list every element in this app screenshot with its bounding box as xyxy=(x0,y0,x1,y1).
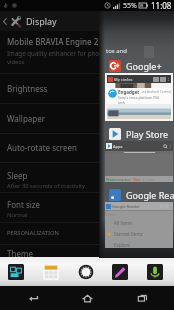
staticText: Auto-rotate screen xyxy=(7,142,77,153)
button[interactable]: Google Reader xyxy=(105,188,174,248)
staticText: Sony's cross-platform PS4 xyxy=(118,95,159,100)
staticText: Google+ xyxy=(126,60,162,72)
staticText: via Android Central xyxy=(142,90,171,94)
button[interactable]: Notes xyxy=(112,264,128,280)
staticText: Engadget xyxy=(118,89,140,95)
staticText: Font size xyxy=(7,199,41,210)
staticText: videos xyxy=(7,58,25,66)
staticText: Mobile BRAVIA Engine 2 xyxy=(7,36,99,47)
staticText: tos and xyxy=(106,47,127,55)
button[interactable]: Google+ xyxy=(105,59,174,73)
staticText: Taxi xyxy=(133,177,141,182)
button[interactable]: Calculator xyxy=(43,264,59,280)
staticText: Brightness xyxy=(7,83,48,94)
button[interactable]: Google+ xyxy=(105,59,174,121)
staticText: Wallpaper xyxy=(7,113,46,124)
staticText: Crysis xyxy=(143,177,155,182)
button[interactable]: Timer xyxy=(78,264,94,280)
staticText: Normal xyxy=(7,211,28,219)
staticText: Apps xyxy=(113,144,123,149)
button[interactable]: Google Reader xyxy=(105,188,174,202)
staticText: PERSONALIZATION xyxy=(7,229,59,237)
button[interactable]: Font size xyxy=(0,195,174,223)
staticText: : xyxy=(170,143,172,150)
staticText: Image quality enhancer for photos and xyxy=(7,49,121,57)
staticText: Watermarker xyxy=(106,177,131,182)
button[interactable]: Recents xyxy=(120,286,164,310)
staticText: Google Reader xyxy=(112,204,140,209)
staticText: After 30 seconds of inactivity xyxy=(7,182,86,190)
button[interactable]: Sleep xyxy=(0,165,174,195)
button[interactable]: Wallpaper xyxy=(0,103,174,133)
staticText: Sleep xyxy=(7,170,28,181)
other: Back xyxy=(2,16,8,27)
staticText: 55% xyxy=(123,1,137,11)
button[interactable]: Voice recorder xyxy=(147,264,163,280)
button[interactable]: Mobile BRAVIA Engine 2 xyxy=(0,36,174,66)
staticText: : xyxy=(168,76,170,83)
staticText: My circles xyxy=(114,77,133,82)
staticText: Play Store xyxy=(126,128,168,140)
staticText: Theme xyxy=(7,248,33,259)
staticText: Explore xyxy=(114,242,130,248)
staticText: : xyxy=(170,204,172,209)
staticText: 11:08 xyxy=(151,0,172,11)
button[interactable]: Back xyxy=(11,286,55,310)
staticText: tech xyxy=(118,100,125,104)
button[interactable]: Theme xyxy=(0,244,174,262)
button[interactable]: Auto-rotate screen xyxy=(0,133,174,162)
staticText: Google Reader xyxy=(126,189,174,201)
button[interactable]: Brightness xyxy=(0,73,174,103)
button[interactable]: Play Store xyxy=(105,127,174,141)
button[interactable]: Back xyxy=(0,11,174,31)
staticText: Display xyxy=(26,15,57,27)
staticText: Starred Items xyxy=(114,231,143,237)
staticText: FEEDS xyxy=(106,212,117,217)
staticText: All Items xyxy=(114,220,133,226)
button[interactable]: Play Store xyxy=(105,127,174,182)
button[interactable]: Small apps xyxy=(8,264,24,280)
button[interactable]: Home xyxy=(65,286,109,310)
